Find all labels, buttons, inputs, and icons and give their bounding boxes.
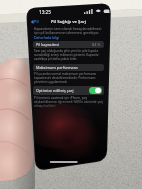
staticText: Pil ömrünü uzatmak için iPhone, şarj alı… [34,96,103,108]
button[interactable]: Back to Battery [27,17,43,26]
staticText: Tam şarj olduğunda pilin yeni bir pile k… [34,49,103,61]
button[interactable]: Daha fazla bilgi [34,35,60,40]
staticText: Pil kapasitesi [36,42,59,47]
staticText: 13:25 [39,9,51,15]
button[interactable]: Optimize edilmiş şarj [33,86,104,95]
staticText: Pil [34,19,39,24]
staticText: 84 % [92,42,101,47]
button[interactable]: Optimize edilmiş şarj açık [89,87,102,94]
staticText: Pil Sağlığı ve Şarj [51,19,87,25]
staticText: Optimize edilmiş şarj [36,88,74,93]
button[interactable]: Maksimum performans [33,64,104,71]
staticText: Kapasitenin tam olarak hesaplanabilmesi … [34,26,103,35]
staticText: Maksimum performans [36,65,78,70]
staticText: Pil şu anda normal maksimum performans k… [34,72,103,84]
button[interactable]: Pil kapasitesi [33,41,104,48]
